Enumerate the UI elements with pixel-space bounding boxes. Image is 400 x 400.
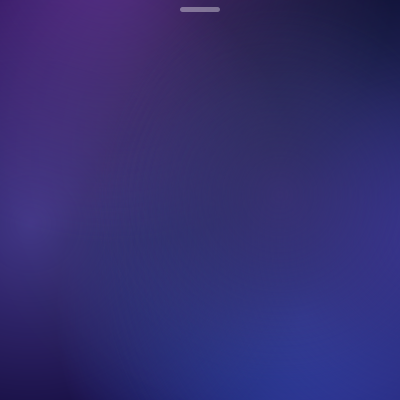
button[interactable]: Dismiss sheet — [180, 7, 220, 12]
